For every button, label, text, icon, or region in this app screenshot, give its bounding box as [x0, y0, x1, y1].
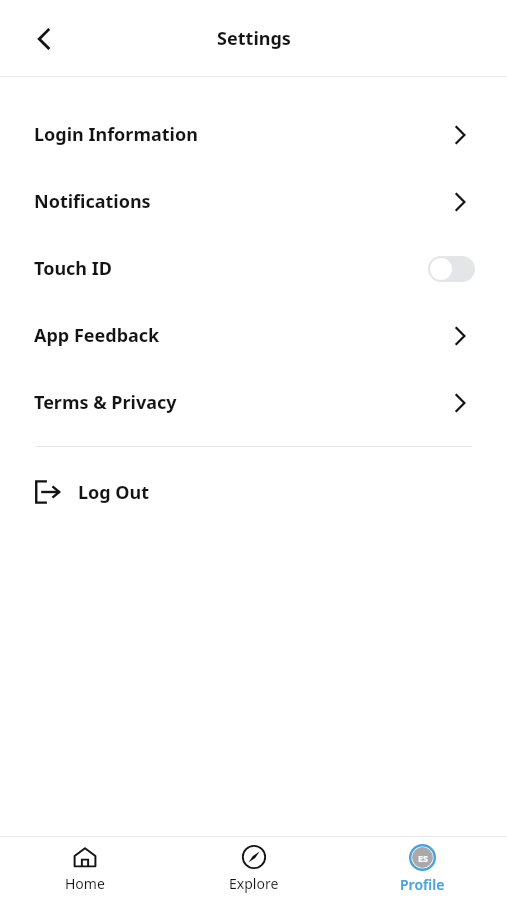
button[interactable]: Home	[0, 837, 169, 900]
button[interactable]: Login Information	[0, 101, 507, 168]
button[interactable]: ES	[338, 837, 507, 900]
staticText: ES	[418, 852, 428, 864]
staticText: Log Out	[78, 480, 150, 505]
staticText: Settings	[217, 26, 291, 51]
staticText: App Feedback	[34, 323, 449, 348]
staticText: Explore	[229, 874, 279, 893]
button[interactable]: Explore	[169, 837, 338, 900]
button[interactable]: Notifications	[0, 168, 507, 235]
staticText: Home	[65, 874, 105, 893]
button[interactable]: Terms & Privacy	[0, 369, 507, 436]
staticText: Profile	[400, 875, 445, 894]
button[interactable]: Back	[20, 15, 68, 63]
button[interactable]: App Feedback	[0, 302, 507, 369]
staticText: Terms & Privacy	[34, 390, 449, 415]
button[interactable]: Touch ID	[0, 235, 507, 302]
button[interactable]: Log Out	[0, 447, 507, 537]
staticText: Touch ID	[34, 256, 428, 281]
staticText: Login Information	[34, 122, 449, 147]
staticText: Notifications	[34, 189, 449, 214]
